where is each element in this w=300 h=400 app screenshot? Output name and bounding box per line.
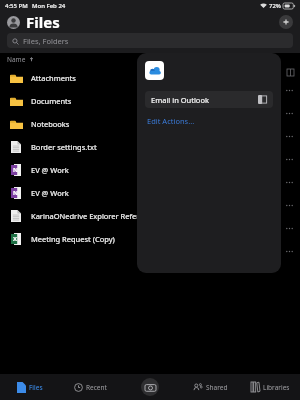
staticText: Edit Actions...: [147, 116, 195, 126]
button[interactable]: Add: [279, 15, 293, 29]
button[interactable]: Border settings.txt: [0, 135, 300, 158]
staticText: Email in Outlook: [151, 95, 209, 105]
button[interactable]: More options: [285, 224, 294, 233]
staticText: Shared: [206, 383, 228, 392]
staticText: N: [13, 166, 18, 174]
button[interactable]: More options: [285, 201, 294, 210]
staticText: KarinaONedrive Explorer Reference: [31, 211, 156, 221]
button[interactable]: Email in Outlook: [145, 91, 273, 108]
staticText: Meeting Request (Copy): [31, 234, 115, 244]
button[interactable]: Scan: [141, 378, 159, 396]
button[interactable]: Edit Actions...: [145, 115, 197, 127]
staticText: Files, Folders: [23, 36, 69, 46]
staticText: Name: [7, 55, 26, 64]
button[interactable]: Libraries: [240, 374, 300, 400]
button[interactable]: More options: [285, 178, 294, 187]
button[interactable]: Documents: [0, 89, 300, 112]
staticText: Documents: [31, 96, 72, 106]
staticText: Files: [26, 12, 60, 32]
staticText: Notebooks: [31, 119, 70, 129]
staticText: Libraries: [263, 383, 290, 392]
button[interactable]: More options: [285, 86, 294, 95]
button[interactable]: Shared: [180, 374, 240, 400]
staticText: X: [13, 235, 18, 243]
staticText: EV @ Work: [31, 188, 69, 198]
button[interactable]: Recent: [60, 374, 120, 400]
button[interactable]: Files: [0, 374, 60, 400]
staticText: Attachments: [31, 73, 76, 83]
button[interactable]: More options: [285, 155, 294, 164]
staticText: EV @ Work: [31, 165, 69, 175]
staticText: Mon Feb 24: [32, 2, 66, 10]
button[interactable]: KarinaONedrive Explorer Reference: [0, 204, 300, 227]
staticText: 72%: [269, 2, 281, 10]
button[interactable]: Attachments: [0, 66, 300, 89]
button[interactable]: Account: [7, 16, 20, 29]
button[interactable]: Files, Folders: [7, 33, 293, 48]
button[interactable]: N: [0, 158, 300, 181]
staticText: Files: [29, 383, 43, 392]
button[interactable]: Notebooks: [0, 112, 300, 135]
button[interactable]: Change view: [287, 69, 294, 76]
button[interactable]: More options: [285, 109, 294, 118]
button[interactable]: X: [0, 227, 300, 250]
staticText: 4:55 PM: [5, 2, 28, 10]
staticText: Border settings.txt: [31, 142, 97, 152]
button[interactable]: More options: [285, 247, 294, 256]
staticText: Recent: [86, 383, 107, 392]
button[interactable]: N: [0, 181, 300, 204]
button[interactable]: OneDrive: [145, 61, 164, 80]
staticText: N: [13, 189, 18, 197]
button[interactable]: More options: [285, 132, 294, 141]
